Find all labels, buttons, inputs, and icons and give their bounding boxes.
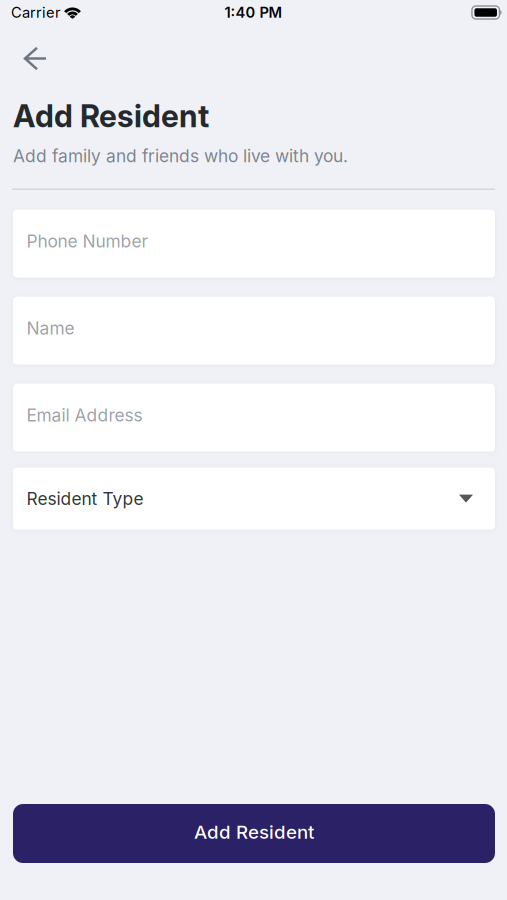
button[interactable]: Email Address bbox=[13, 384, 495, 452]
staticText: Carrier bbox=[11, 4, 61, 21]
staticText: Resident Type bbox=[26, 488, 143, 509]
button[interactable]: Back bbox=[0, 28, 46, 70]
staticText: Phone Number bbox=[26, 231, 148, 251]
staticText: Email Address bbox=[26, 405, 142, 425]
button[interactable]: Resident Type bbox=[13, 471, 495, 533]
staticText: Name bbox=[26, 318, 74, 338]
button[interactable]: Phone Number bbox=[13, 210, 495, 278]
staticText: Add Resident bbox=[13, 98, 209, 134]
staticText: 1:40 PM bbox=[224, 4, 282, 21]
button[interactable]: Add Resident bbox=[13, 804, 495, 863]
staticText: Add Resident bbox=[194, 821, 314, 843]
staticText: Add family and friends who live with you… bbox=[13, 146, 348, 166]
button[interactable]: Name bbox=[13, 297, 495, 365]
